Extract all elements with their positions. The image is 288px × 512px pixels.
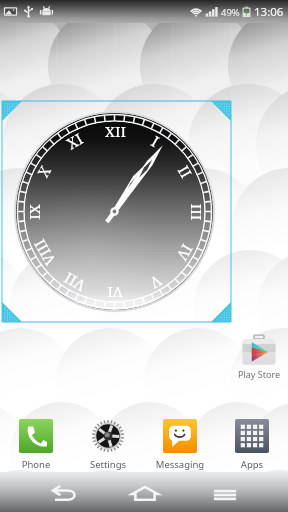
staticText: Play Store [231,368,287,380]
button[interactable]: Home [127,477,163,509]
button[interactable]: Back [46,477,82,509]
staticText: 13:06 [254,4,284,20]
button[interactable]: Messaging [144,419,216,471]
button[interactable]: Analog clock widget [0,0,288,512]
button[interactable]: Recent apps [207,477,243,509]
staticText: XII [105,121,126,139]
button[interactable]: Settings [72,419,144,471]
staticText: V [147,272,166,294]
button[interactable]: Play Store [231,331,287,380]
staticText: VII [60,270,88,296]
staticText: XI [63,128,85,152]
staticText: I [149,131,163,149]
staticText: VI [107,285,123,303]
staticText: II [175,161,197,181]
staticText: Phone [0,458,72,471]
staticText: X [33,162,53,180]
staticText: III [188,203,206,220]
staticText: Messaging [144,458,216,471]
staticText: Settings [72,458,144,471]
staticText: Apps [216,458,288,471]
button[interactable]: Apps [216,419,288,471]
staticText: 49% [221,6,240,19]
button[interactable]: Phone [0,419,72,471]
staticText: IV [174,242,198,264]
staticText: IX [24,204,42,220]
staticText: VIII [29,237,58,269]
